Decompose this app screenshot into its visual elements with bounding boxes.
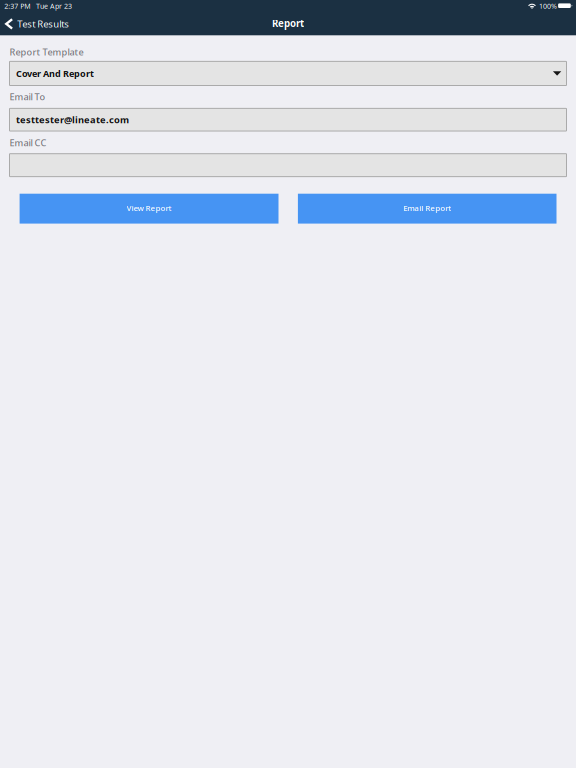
button[interactable]: Email Report xyxy=(298,194,556,224)
button[interactable]: Email CC xyxy=(9,154,566,177)
staticText: 100% xyxy=(539,1,557,11)
staticText: Tue Apr 23 xyxy=(36,1,72,11)
staticText: Cover And Report xyxy=(16,67,94,80)
staticText: testtester@lineate.com xyxy=(16,113,129,126)
button[interactable]: View Report xyxy=(20,194,278,224)
staticText: Email CC xyxy=(9,136,46,149)
button[interactable]: Email To xyxy=(9,108,566,131)
staticText: 2:37 PM xyxy=(4,1,30,11)
button[interactable]: Test Results xyxy=(4,13,104,34)
staticText: Report xyxy=(272,16,304,30)
staticText: Test Results xyxy=(17,17,69,30)
staticText: Report Template xyxy=(9,46,83,58)
staticText: Email Report xyxy=(403,202,451,213)
staticText: Email To xyxy=(9,90,45,103)
staticText: View Report xyxy=(126,202,171,213)
button[interactable]: Cover And Report xyxy=(9,61,566,85)
